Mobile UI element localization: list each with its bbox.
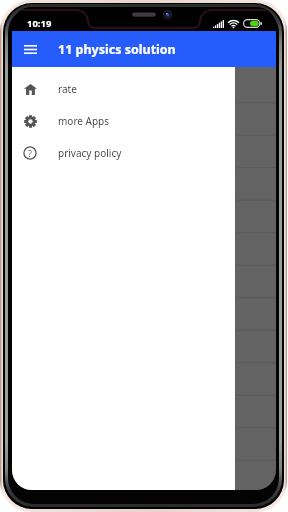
staticText: 11 physics solution	[58, 41, 176, 58]
button[interactable]: ?	[12, 137, 235, 169]
staticText: more Apps	[58, 114, 110, 128]
staticText: ?	[28, 147, 32, 159]
button[interactable]: more Apps	[12, 105, 235, 137]
button[interactable]: rate	[12, 73, 235, 105]
staticText: privacy policy	[58, 146, 122, 160]
button[interactable]: Open navigation drawer	[15, 34, 45, 64]
staticText: 10:19	[27, 17, 52, 30]
staticText: rate	[58, 82, 77, 96]
